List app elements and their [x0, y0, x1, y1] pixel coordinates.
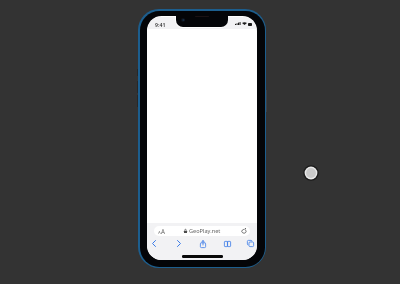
button[interactable]: Tabs: [240, 239, 257, 248]
staticText: A: [161, 227, 165, 235]
button[interactable]: Reload: [241, 228, 247, 234]
button[interactable]: Back: [147, 239, 164, 248]
other: Pointer: [303, 165, 319, 181]
staticText: ᴀ: [158, 228, 161, 235]
button[interactable]: Share: [193, 239, 213, 248]
button[interactable]: Bookmarks: [217, 239, 237, 248]
button[interactable]: Forward: [169, 239, 189, 248]
button[interactable]: ᴀ: [154, 226, 250, 236]
staticText: 9:41: [155, 21, 166, 28]
staticText: GeoPlay.net: [189, 227, 221, 235]
